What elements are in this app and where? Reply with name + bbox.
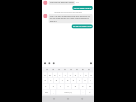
staticText: k — [84, 79, 86, 82]
staticText: English (US) — [64, 91, 72, 93]
staticText: q — [44, 73, 46, 76]
button[interactable]: k — [82, 78, 88, 83]
staticText: 12:47 — [76, 2, 79, 4]
staticText: b — [75, 85, 76, 88]
staticText: v — [67, 85, 69, 88]
button[interactable]: i — [78, 72, 83, 77]
button[interactable]: Back — [52, 97, 56, 101]
staticText: That was so weird do avoid — [50, 1, 74, 4]
staticText: i — [80, 73, 81, 76]
staticText: c — [60, 85, 61, 88]
button[interactable]: d — [54, 78, 59, 83]
staticText: ok see you later then — [73, 25, 91, 28]
staticText: m — [89, 85, 91, 88]
button[interactable]: q — [43, 72, 47, 77]
staticText: a — [44, 79, 46, 82]
staticText: ↵ — [89, 91, 90, 93]
staticText: z — [45, 85, 46, 88]
button[interactable]: Home — [66, 97, 70, 101]
button[interactable]: y — [68, 72, 73, 77]
button[interactable]: a — [43, 78, 48, 83]
button[interactable]: Camera — [89, 61, 93, 65]
button[interactable]: z — [43, 84, 49, 89]
staticText: n — [82, 85, 83, 88]
button[interactable]: , — [51, 90, 56, 95]
button[interactable]: Attach — [52, 61, 56, 65]
button[interactable]: o — [84, 72, 88, 77]
staticText: t — [65, 73, 66, 76]
staticText: g — [67, 79, 68, 82]
staticText: ?123 — [45, 91, 48, 93]
staticText: x — [53, 85, 54, 88]
button[interactable]: Recents — [80, 97, 84, 101]
staticText: h — [73, 79, 74, 82]
staticText: e — [54, 73, 56, 76]
button[interactable]: b — [72, 84, 79, 89]
staticText: Messages and calls are end-to-end encryp… — [54, 11, 82, 13]
button[interactable]: English (US) — [56, 90, 80, 95]
button[interactable]: c — [57, 84, 64, 89]
button[interactable]: e — [53, 72, 57, 77]
button[interactable]: g — [65, 78, 70, 83]
button[interactable]: u — [73, 72, 78, 77]
button[interactable]: t — [63, 72, 67, 77]
staticText: u — [75, 73, 76, 76]
button[interactable]: m — [87, 84, 93, 89]
staticText: d — [56, 79, 57, 82]
staticText: Man i do not understand the app anymore … — [50, 15, 91, 22]
staticText: j — [79, 79, 80, 82]
staticText: y — [70, 73, 71, 76]
button[interactable]: v — [64, 84, 71, 89]
staticText: I know right i hate it — [74, 7, 91, 9]
staticText: o — [85, 73, 87, 76]
staticText: , — [53, 91, 54, 94]
button[interactable]: f — [59, 78, 65, 83]
staticText: s — [50, 79, 51, 82]
staticText: l — [90, 79, 91, 82]
button[interactable]: n — [79, 84, 86, 89]
staticText: p — [90, 73, 92, 76]
button[interactable]: ?123 — [43, 90, 50, 95]
button[interactable]: p — [89, 72, 93, 77]
button[interactable]: Enter — [86, 90, 93, 95]
button[interactable]: s — [48, 78, 53, 83]
button[interactable]: l — [88, 78, 93, 83]
button[interactable]: j — [77, 78, 82, 83]
button[interactable]: r — [58, 72, 62, 77]
button[interactable]: h — [71, 78, 76, 83]
button[interactable]: w — [48, 72, 52, 77]
button[interactable]: Attach — [47, 61, 51, 65]
staticText: w — [49, 73, 51, 76]
button[interactable]: x — [50, 84, 57, 89]
button[interactable]: Attach — [43, 61, 47, 65]
